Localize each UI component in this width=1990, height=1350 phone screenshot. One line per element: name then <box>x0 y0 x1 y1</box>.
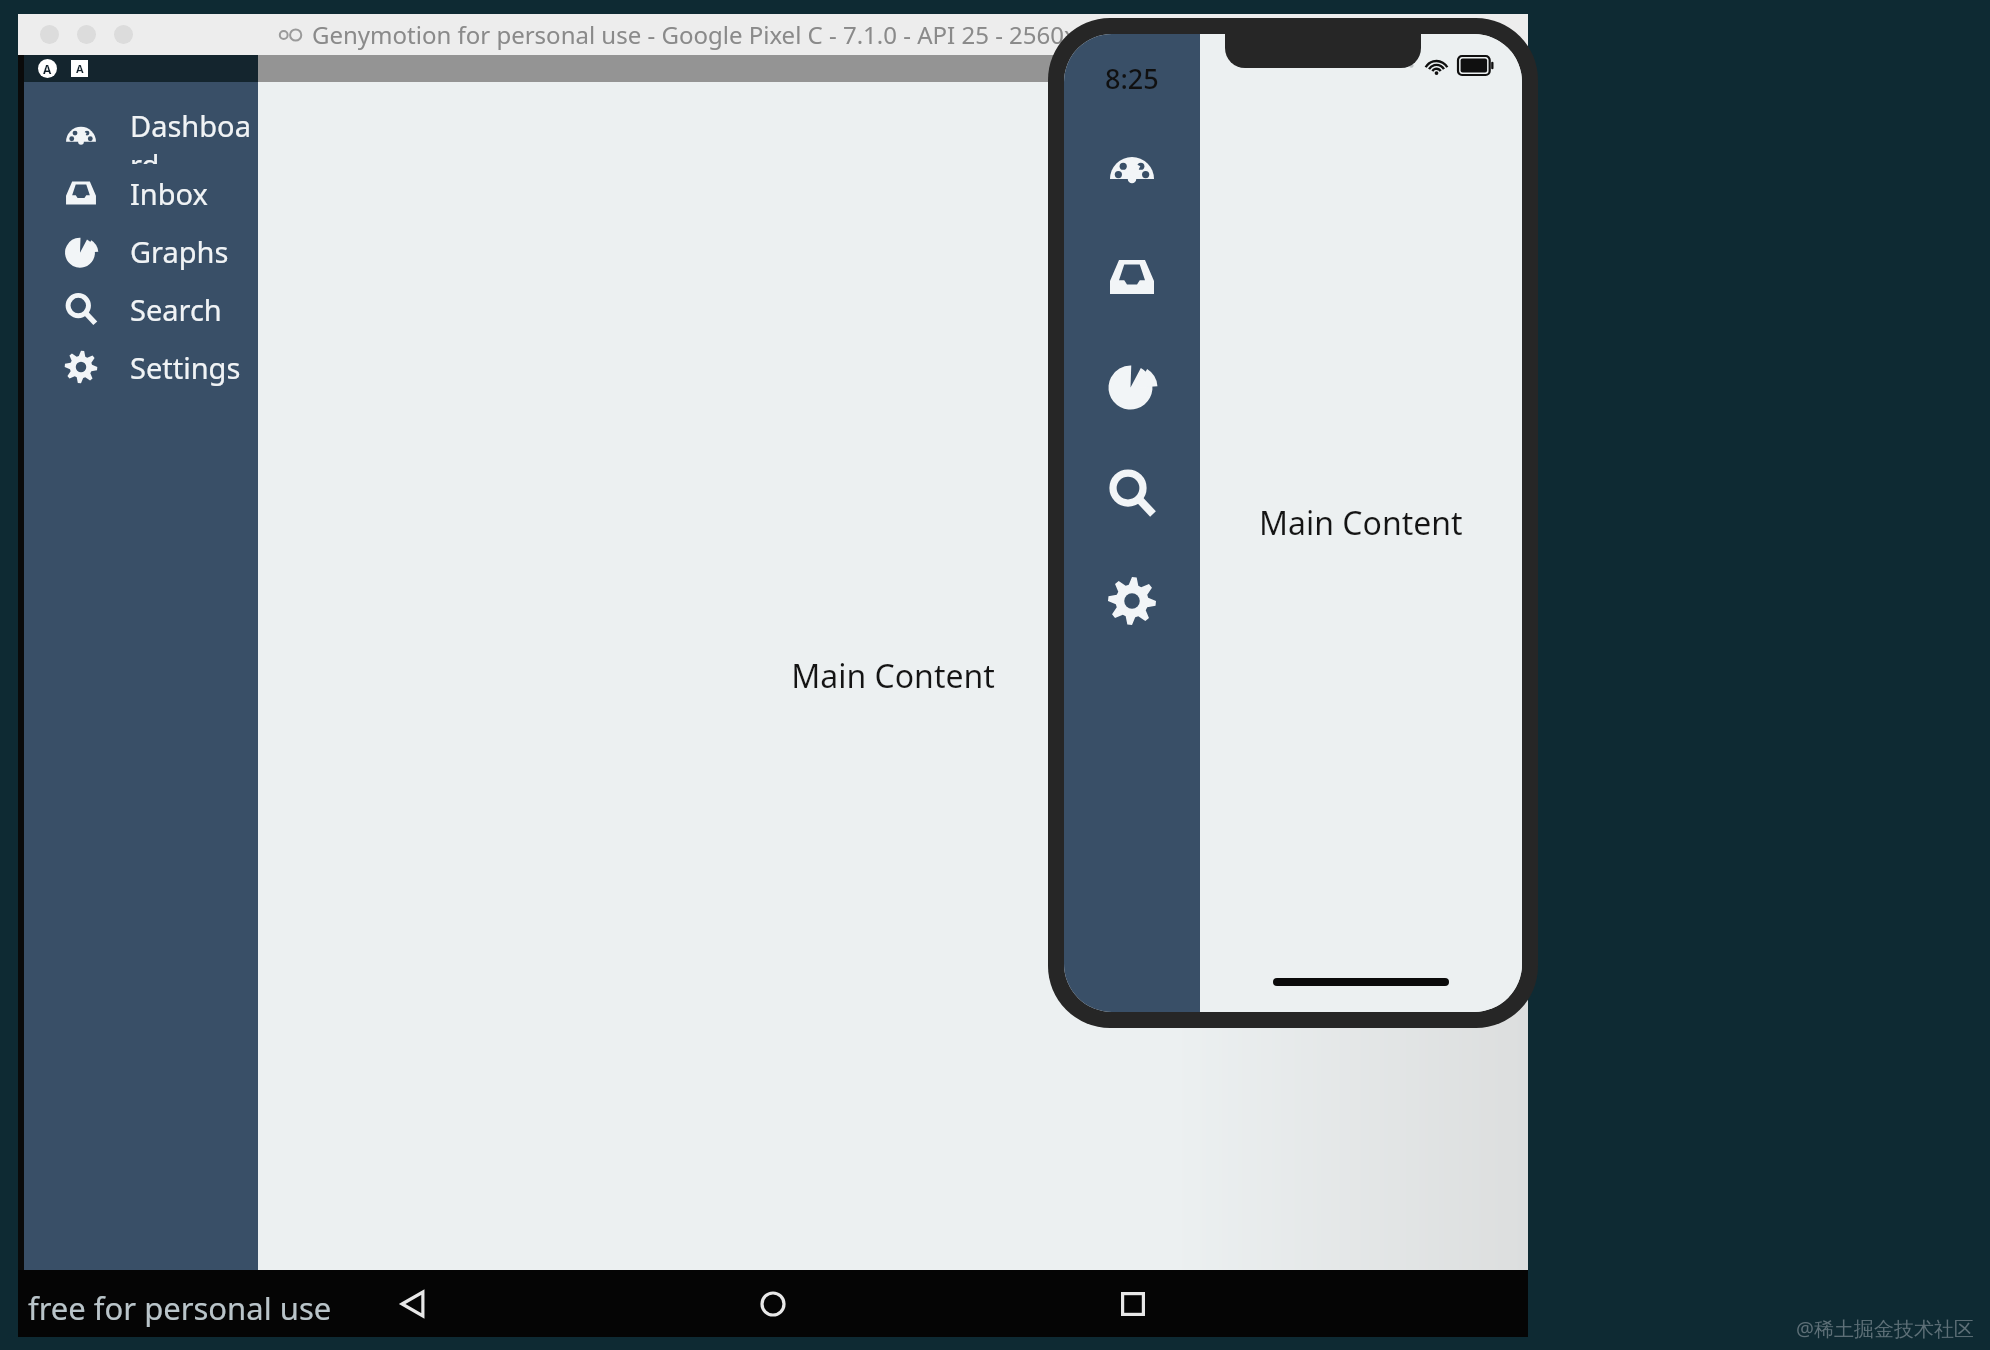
staticText: A <box>43 61 52 77</box>
button[interactable]: Dashboard <box>1088 125 1176 213</box>
staticText: Settings <box>130 348 241 387</box>
staticText: Search <box>130 290 222 329</box>
button[interactable]: Back <box>233 1270 593 1337</box>
button[interactable]: Inbox <box>1088 233 1176 321</box>
button[interactable]: Settings <box>24 338 258 396</box>
staticText: Main Content <box>1259 501 1463 545</box>
button[interactable]: Search <box>24 280 258 338</box>
staticText: A <box>76 61 84 76</box>
button[interactable]: Dashboard <box>24 106 258 164</box>
staticText: @稀土掘金技术社区 <box>1796 1315 1974 1342</box>
staticText: Graphs <box>130 232 229 271</box>
button[interactable]: Graphs <box>1088 341 1176 429</box>
staticText: Inbox <box>130 174 208 213</box>
staticText: Main Content <box>791 654 995 698</box>
staticText: Dashboard <box>130 106 258 164</box>
staticText: free for personal use <box>28 1287 332 1329</box>
staticText: Genymotion for personal use - Google Pix… <box>312 18 1268 51</box>
button[interactable]: Settings <box>1088 557 1176 645</box>
button[interactable]: Inbox <box>24 164 258 222</box>
button[interactable]: Search <box>1088 449 1176 537</box>
button[interactable]: Home <box>593 1270 953 1337</box>
button[interactable]: Recents <box>953 1270 1313 1337</box>
staticText: 8:25 <box>1105 60 1159 97</box>
button[interactable]: Graphs <box>24 222 258 280</box>
